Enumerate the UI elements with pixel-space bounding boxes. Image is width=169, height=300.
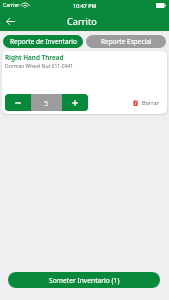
button[interactable]: Back: [4, 15, 16, 27]
button[interactable]: Someter Inventario (1): [8, 272, 160, 288]
staticText: Dorman Wheel Nut 611-0941: [5, 63, 74, 70]
button[interactable]: Decrease: [5, 94, 31, 111]
staticText: Carrito: [67, 15, 97, 28]
staticText: Reporte Especial: [101, 37, 152, 46]
button[interactable]: Reporte de Inventario: [3, 35, 83, 48]
button[interactable]: Reporte Especial: [86, 35, 166, 48]
staticText: 5: [44, 98, 49, 108]
button[interactable]: Increase: [62, 94, 88, 111]
staticText: Right Hand Thread: [5, 53, 64, 62]
staticText: Borrar: [142, 99, 159, 107]
button[interactable]: Borrar: [130, 96, 162, 110]
staticText: 10:47 PM: [73, 2, 97, 9]
staticText: Carrier: [3, 2, 20, 9]
staticText: Reporte de Inventario: [10, 37, 77, 46]
staticText: Someter Inventario (1): [49, 276, 120, 285]
